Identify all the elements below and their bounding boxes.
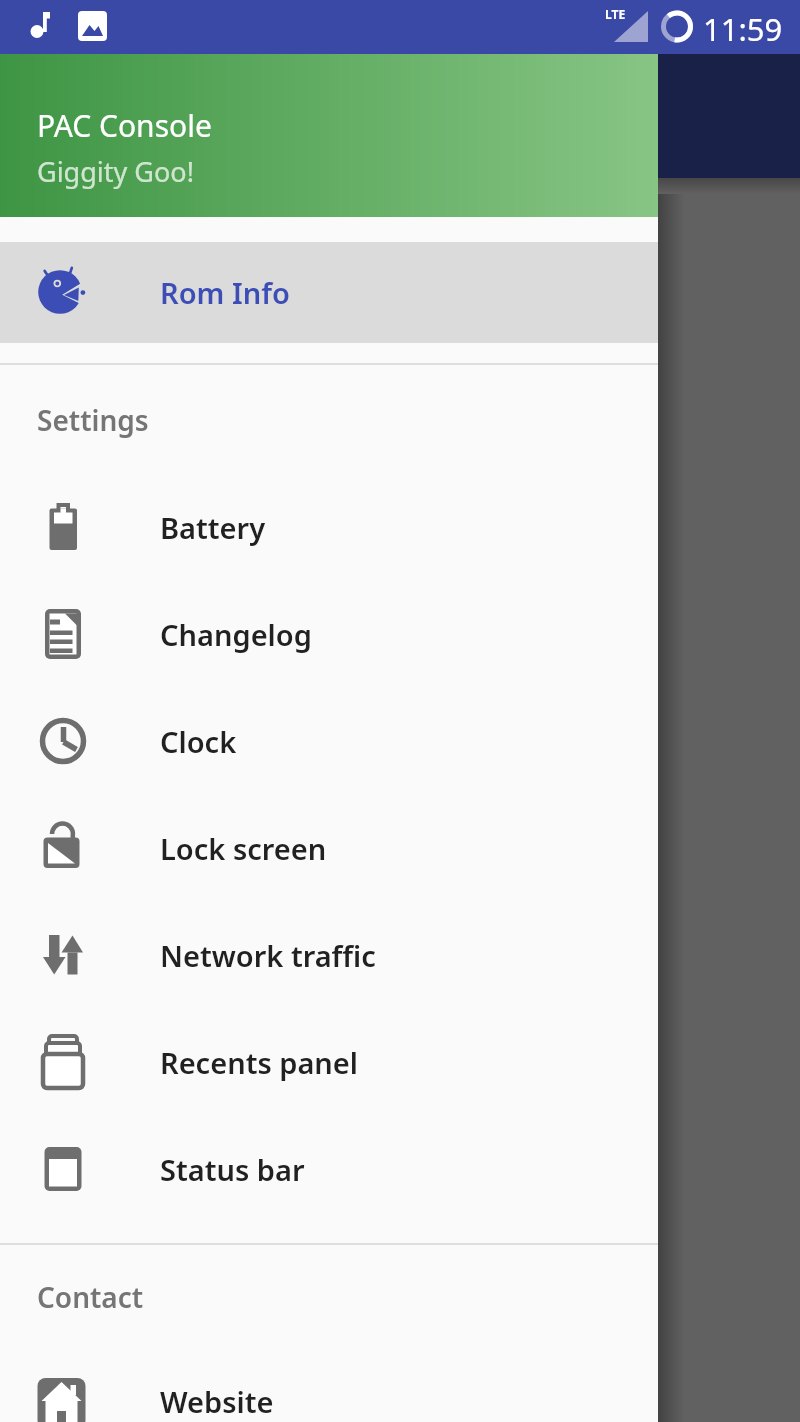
button[interactable]: Network traffic (0, 902, 658, 1009)
staticText: Giggity Goo! (37, 153, 194, 190)
staticText: Recents panel (160, 1043, 359, 1082)
staticText: Lock screen (160, 829, 327, 868)
staticText: Contact (37, 1278, 144, 1316)
button[interactable]: Changelog (0, 581, 658, 688)
button[interactable]: Lock screen (0, 795, 658, 902)
staticText: 11:59 (703, 8, 783, 50)
button[interactable]: Status bar (0, 1116, 658, 1223)
button[interactable]: Battery (0, 474, 658, 581)
button[interactable]: Recents panel (0, 1009, 658, 1116)
button[interactable]: Clock (0, 688, 658, 795)
staticText: Status bar (160, 1150, 305, 1189)
button[interactable]: Website (0, 1349, 658, 1422)
staticText: Clock (160, 722, 237, 761)
staticText: Changelog (160, 615, 312, 654)
staticText: PAC Console (37, 105, 212, 146)
button[interactable]: Rom Info (0, 242, 658, 343)
staticText: Website (160, 1382, 274, 1421)
staticText: Network traffic (160, 936, 376, 975)
staticText: LTE (605, 6, 626, 22)
staticText: Battery (160, 508, 266, 547)
staticText: Settings (37, 401, 149, 439)
staticText: Rom Info (160, 273, 290, 312)
